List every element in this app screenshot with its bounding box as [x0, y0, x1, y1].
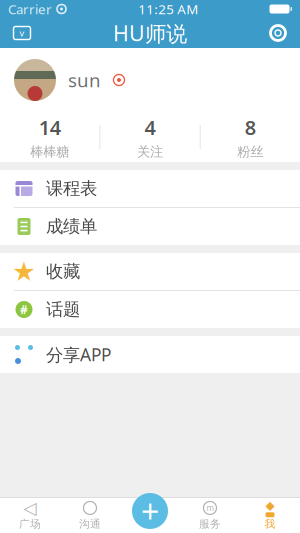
staticText: 服务 [199, 517, 221, 530]
staticText: 收藏 [46, 261, 80, 282]
staticText: 课程表 [46, 178, 97, 199]
staticText: 我 [264, 517, 275, 530]
staticText: m [206, 503, 213, 513]
button[interactable]: 分享APP [0, 336, 300, 373]
staticText: 广场 [19, 517, 41, 530]
staticText: ★ [12, 256, 36, 287]
button[interactable]: Create [130, 491, 170, 531]
button[interactable]: 8 [201, 112, 300, 162]
staticText: 11:25 AM [138, 0, 198, 18]
staticText: ◆ [265, 499, 274, 512]
staticText: HU师说 [113, 19, 187, 47]
button[interactable]: 沟通 [60, 498, 120, 533]
staticText: ◁ [23, 498, 36, 518]
staticText: 话题 [46, 299, 80, 320]
button[interactable]: Messages [0, 18, 44, 48]
button[interactable]: ◆ [240, 498, 300, 533]
staticText: # [20, 301, 28, 317]
staticText: 沟通 [79, 517, 101, 530]
staticText: 14 [39, 114, 61, 141]
staticText: + [141, 490, 159, 532]
button[interactable]: ◁ [0, 498, 60, 533]
staticText: 成绩单 [46, 216, 97, 237]
button[interactable]: sun [0, 48, 300, 112]
button[interactable]: 课程表 [0, 170, 300, 207]
staticText: 棒棒糖 [30, 144, 69, 160]
staticText: 关注 [137, 144, 163, 160]
button[interactable]: 4 [100, 112, 200, 162]
button[interactable]: 成绩单 [0, 208, 300, 245]
button[interactable]: m [180, 498, 240, 533]
staticText: 8 [245, 114, 256, 141]
staticText: 粉丝 [237, 144, 263, 160]
staticText: Carrier [8, 0, 52, 18]
staticText: sun [68, 68, 101, 92]
button[interactable]: # [0, 291, 300, 328]
button[interactable]: ★ [0, 253, 300, 290]
staticText: 分享APP [46, 343, 111, 366]
button[interactable]: Settings [256, 18, 300, 48]
staticText: v [19, 27, 24, 39]
button[interactable]: 14 [0, 112, 99, 162]
staticText: 4 [144, 114, 155, 141]
